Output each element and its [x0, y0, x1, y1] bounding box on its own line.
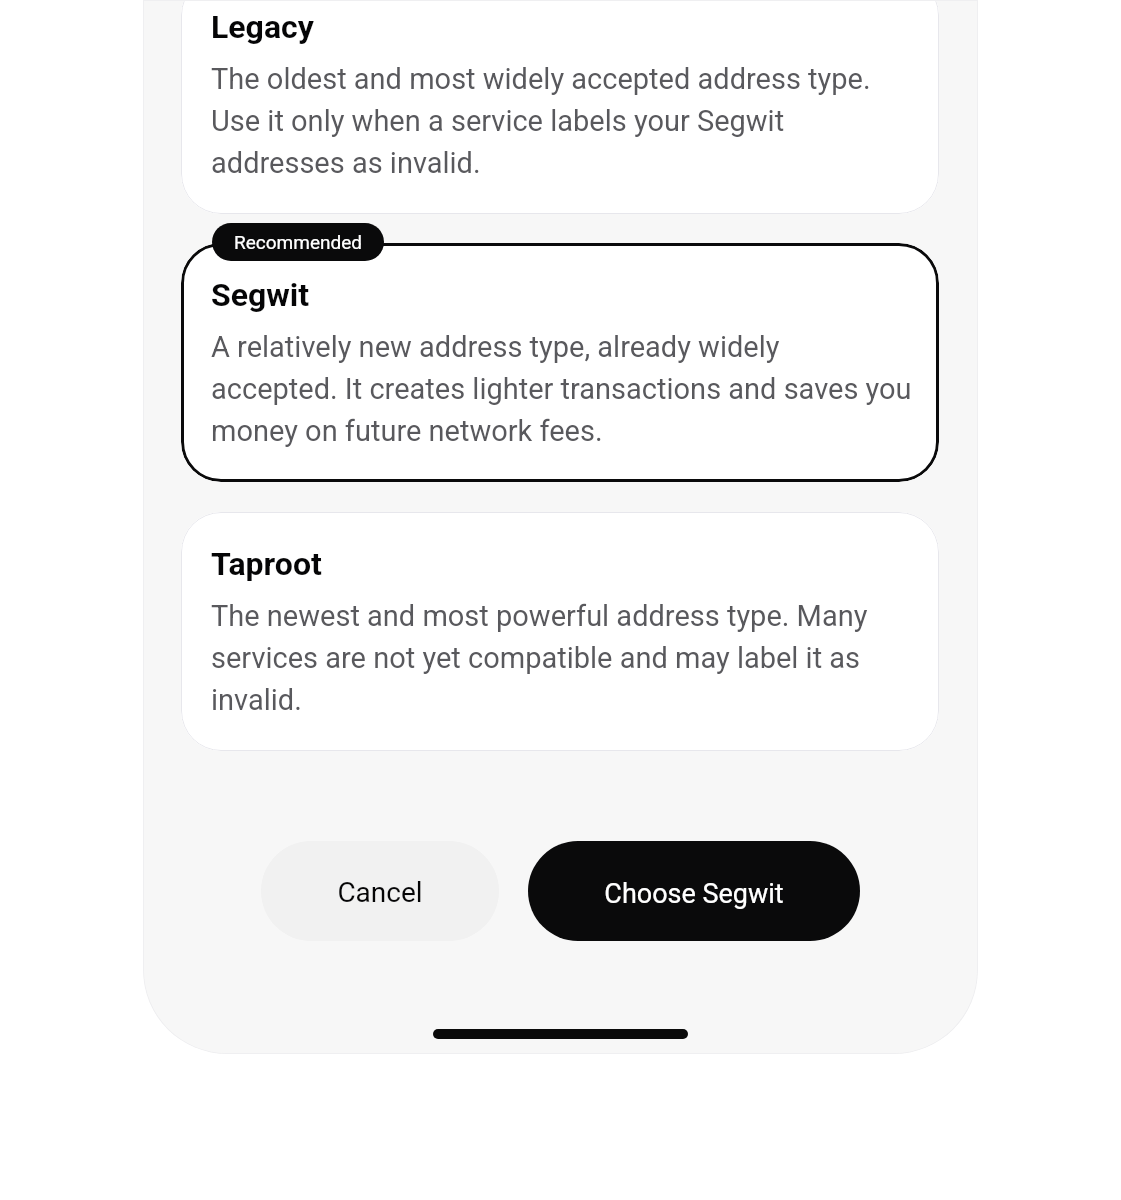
staticText: The newest and most powerful address typ… [211, 599, 868, 718]
staticText: Recommended [234, 231, 362, 253]
button[interactable]: Taproot [181, 512, 939, 751]
button[interactable]: Choose Segwit [528, 841, 860, 941]
staticText: Legacy [211, 8, 314, 46]
staticText: Taproot [211, 545, 322, 583]
staticText: Cancel [337, 876, 423, 909]
staticText: Choose Segwit [604, 878, 784, 910]
button[interactable]: Cancel [261, 841, 499, 941]
button[interactable]: Segwit [181, 243, 939, 482]
staticText: Segwit [211, 276, 310, 314]
staticText: A relatively new address type, already w… [211, 330, 912, 449]
staticText: The oldest and most widely accepted addr… [211, 62, 871, 181]
button[interactable]: Legacy [181, 0, 939, 214]
